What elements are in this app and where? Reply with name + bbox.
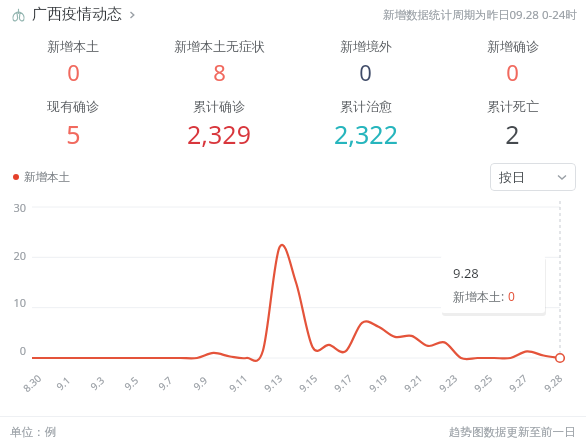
staticText: 9.1 [53, 373, 74, 393]
staticText: 5 [66, 117, 81, 151]
staticText: 2 [505, 117, 520, 151]
staticText: 8 [213, 57, 226, 87]
button[interactable]: 现有确诊 [0, 98, 146, 151]
staticText: 累计确诊 [193, 98, 245, 114]
staticText: 0 [0, 343, 26, 358]
staticText: 9.21 [401, 371, 425, 395]
staticText: 9.28 [453, 264, 479, 282]
staticText: 新增本土: [453, 288, 508, 304]
staticText: 累计治愈 [340, 98, 392, 114]
staticText: 单位：例 [10, 425, 56, 439]
staticText: 2,322 [334, 117, 398, 151]
button[interactable]: 按日 [490, 163, 576, 191]
staticText: 9.23 [436, 371, 460, 395]
staticText: 新增本土 [24, 170, 70, 184]
staticText: 9.28 [541, 371, 565, 395]
staticText: 9.25 [471, 371, 495, 395]
staticText: 9.9 [190, 373, 211, 393]
staticText: 趋势图数据更新至前一日 [449, 425, 576, 439]
staticText: 9.13 [261, 371, 285, 395]
staticText: 9.27 [506, 371, 530, 395]
staticText: 2,329 [187, 117, 251, 151]
staticText: 8.30 [20, 371, 44, 395]
staticText: 现有确诊 [47, 98, 99, 114]
staticText: 0 [67, 57, 80, 87]
staticText: 0 [508, 288, 515, 304]
staticText: 9.17 [331, 371, 355, 395]
staticText: 9.5 [121, 373, 142, 393]
staticText: 30 [0, 200, 26, 215]
staticText: 9.11 [226, 371, 250, 395]
button[interactable]: 累计治愈 [292, 98, 439, 151]
staticText: 新增本土 [47, 38, 99, 54]
button[interactable]: 累计死亡 [439, 98, 586, 151]
staticText: 新增数据统计周期为昨日09.28 0-24时 [383, 7, 577, 23]
button[interactable]: 新增本土 [10, 167, 73, 187]
other: Select period [557, 172, 567, 182]
staticText: 累计死亡 [487, 98, 539, 114]
button[interactable]: 新增本土 [0, 38, 146, 87]
button[interactable]: 新增本土无症状 [146, 38, 292, 87]
staticText: 9.19 [366, 371, 390, 395]
staticText: 按日 [499, 169, 525, 185]
button[interactable]: 新增确诊 [439, 38, 586, 87]
staticText: 广西疫情动态 [32, 5, 122, 24]
staticText: 0 [359, 57, 372, 87]
staticText: 9.7 [155, 373, 176, 393]
staticText: 新增确诊 [487, 38, 539, 54]
button[interactable]: 累计确诊 [146, 98, 292, 151]
staticText: 20 [0, 248, 26, 263]
staticText: 新增境外 [340, 38, 392, 54]
staticText: 9.3 [87, 373, 108, 393]
staticText: 0 [506, 57, 519, 87]
button[interactable]: 广西疫情动态 [9, 3, 139, 26]
staticText: 10 [0, 295, 26, 310]
button[interactable]: 新增境外 [292, 38, 439, 87]
staticText: 9.15 [296, 371, 320, 395]
staticText: 新增本土无症状 [174, 38, 265, 54]
